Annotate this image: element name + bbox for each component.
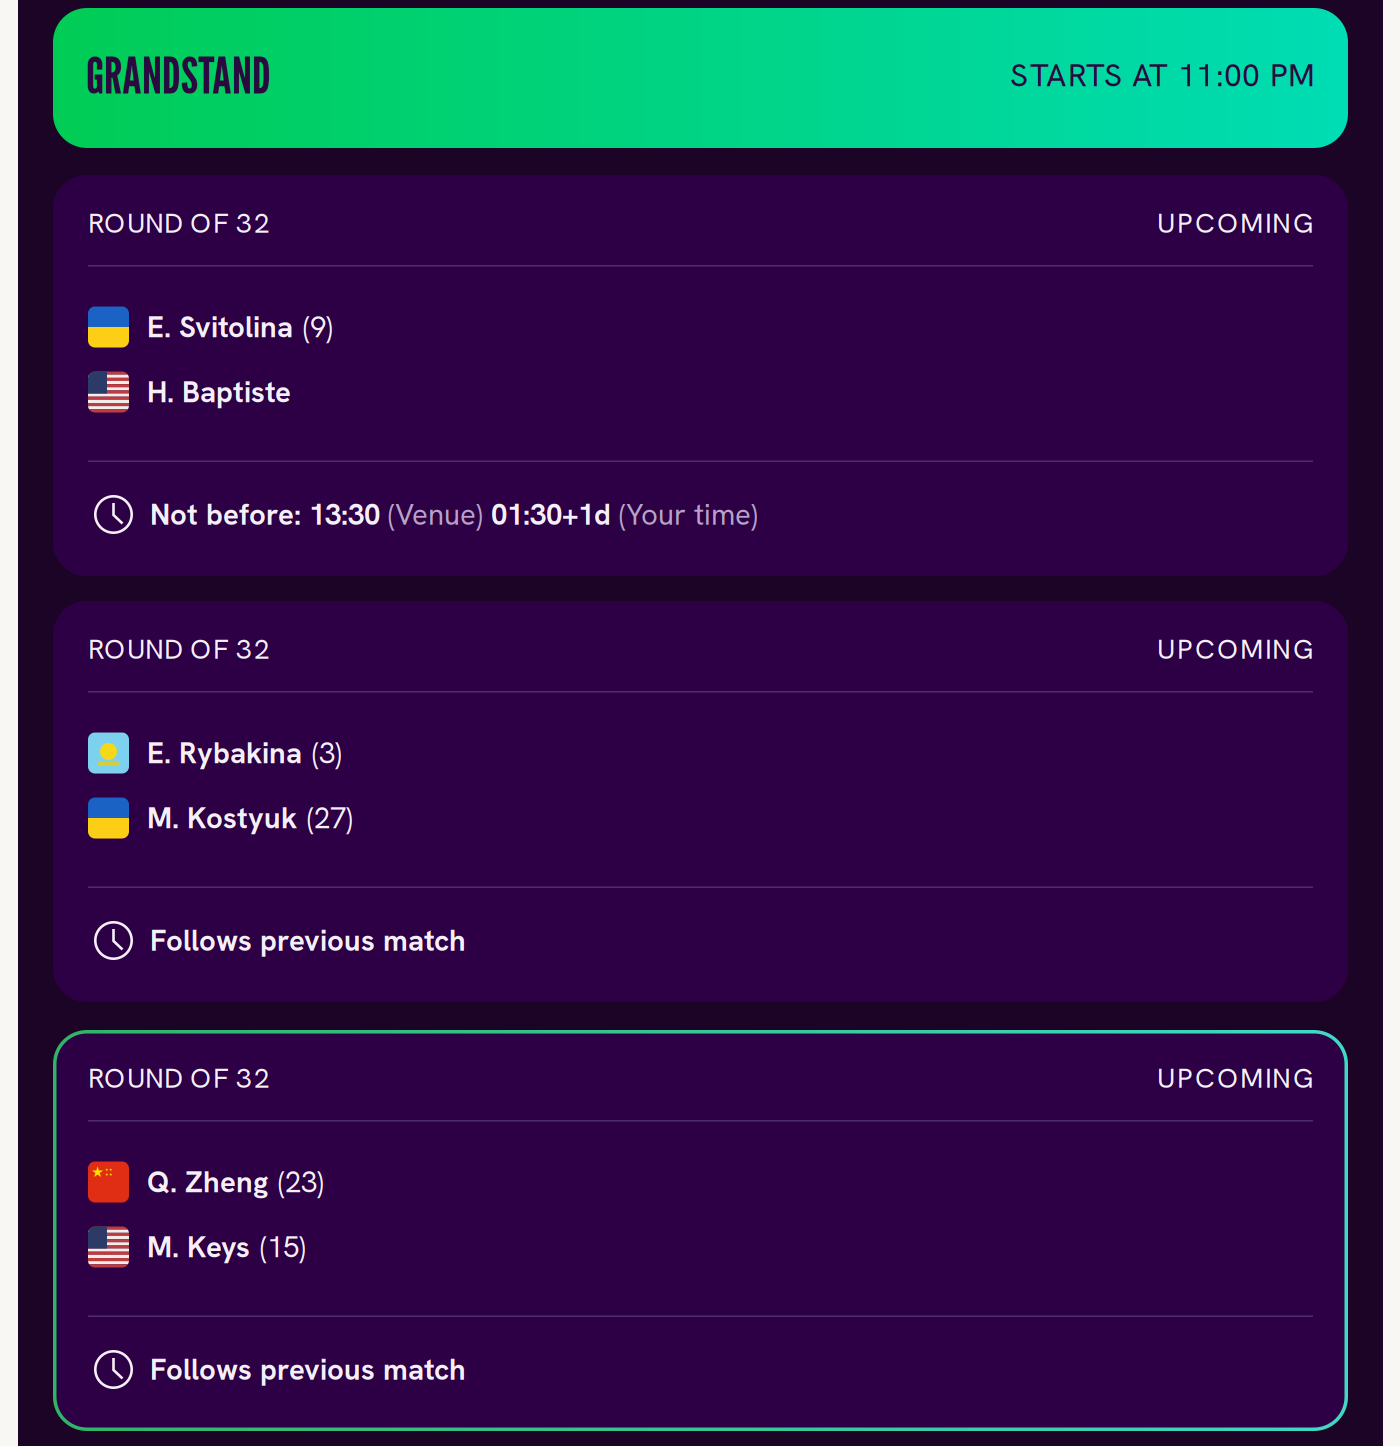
staticText: ★★ xyxy=(105,1167,113,1172)
staticText: (23) xyxy=(278,1163,324,1201)
button[interactable]: RO UND O F 3 2 xyxy=(53,601,1348,1002)
staticText: (15) xyxy=(260,1228,306,1266)
staticText: H. Baptiste xyxy=(147,373,291,411)
staticText: RO UND O F 3 2 xyxy=(88,1060,270,1096)
staticText: E. Svitolina xyxy=(147,308,293,346)
staticText: M. Keys xyxy=(147,1228,250,1266)
staticText: U P C O M IN G xyxy=(1157,631,1313,667)
staticText: M. Kostyuk xyxy=(147,799,297,837)
staticText: (27) xyxy=(307,799,353,837)
staticText: Q. Zheng xyxy=(147,1163,268,1201)
staticText: U P C O M IN G xyxy=(1157,205,1313,241)
staticText: Follows previous match xyxy=(150,1350,466,1389)
staticText: RO UND O F 3 2 xyxy=(88,631,270,667)
staticText: (Your time) xyxy=(619,495,758,534)
staticText: Not before: 13:30 xyxy=(150,495,388,534)
staticText: GRANDSTAND xyxy=(86,45,271,105)
staticText: U P C O M IN G xyxy=(1157,1060,1313,1096)
staticText: RO UND O F 3 2 xyxy=(88,205,270,241)
staticText: 01:30+1d xyxy=(491,495,619,534)
button[interactable]: GRANDSTAND xyxy=(53,8,1348,148)
staticText: Follows previous match xyxy=(150,921,466,960)
staticText: (Venue) xyxy=(388,495,491,534)
staticText: ★★ xyxy=(105,1172,113,1177)
button[interactable]: RO UND O F 3 2 xyxy=(53,175,1348,576)
staticText: (9) xyxy=(303,308,333,346)
staticText: (3) xyxy=(312,734,342,772)
staticText: S TA RTS AT 11 :00 PM xyxy=(1010,54,1315,96)
staticText: E. Rybakina xyxy=(147,734,302,772)
button[interactable]: RO UND O F 3 2 xyxy=(53,1030,1348,1431)
staticText: ★ xyxy=(91,1163,104,1181)
